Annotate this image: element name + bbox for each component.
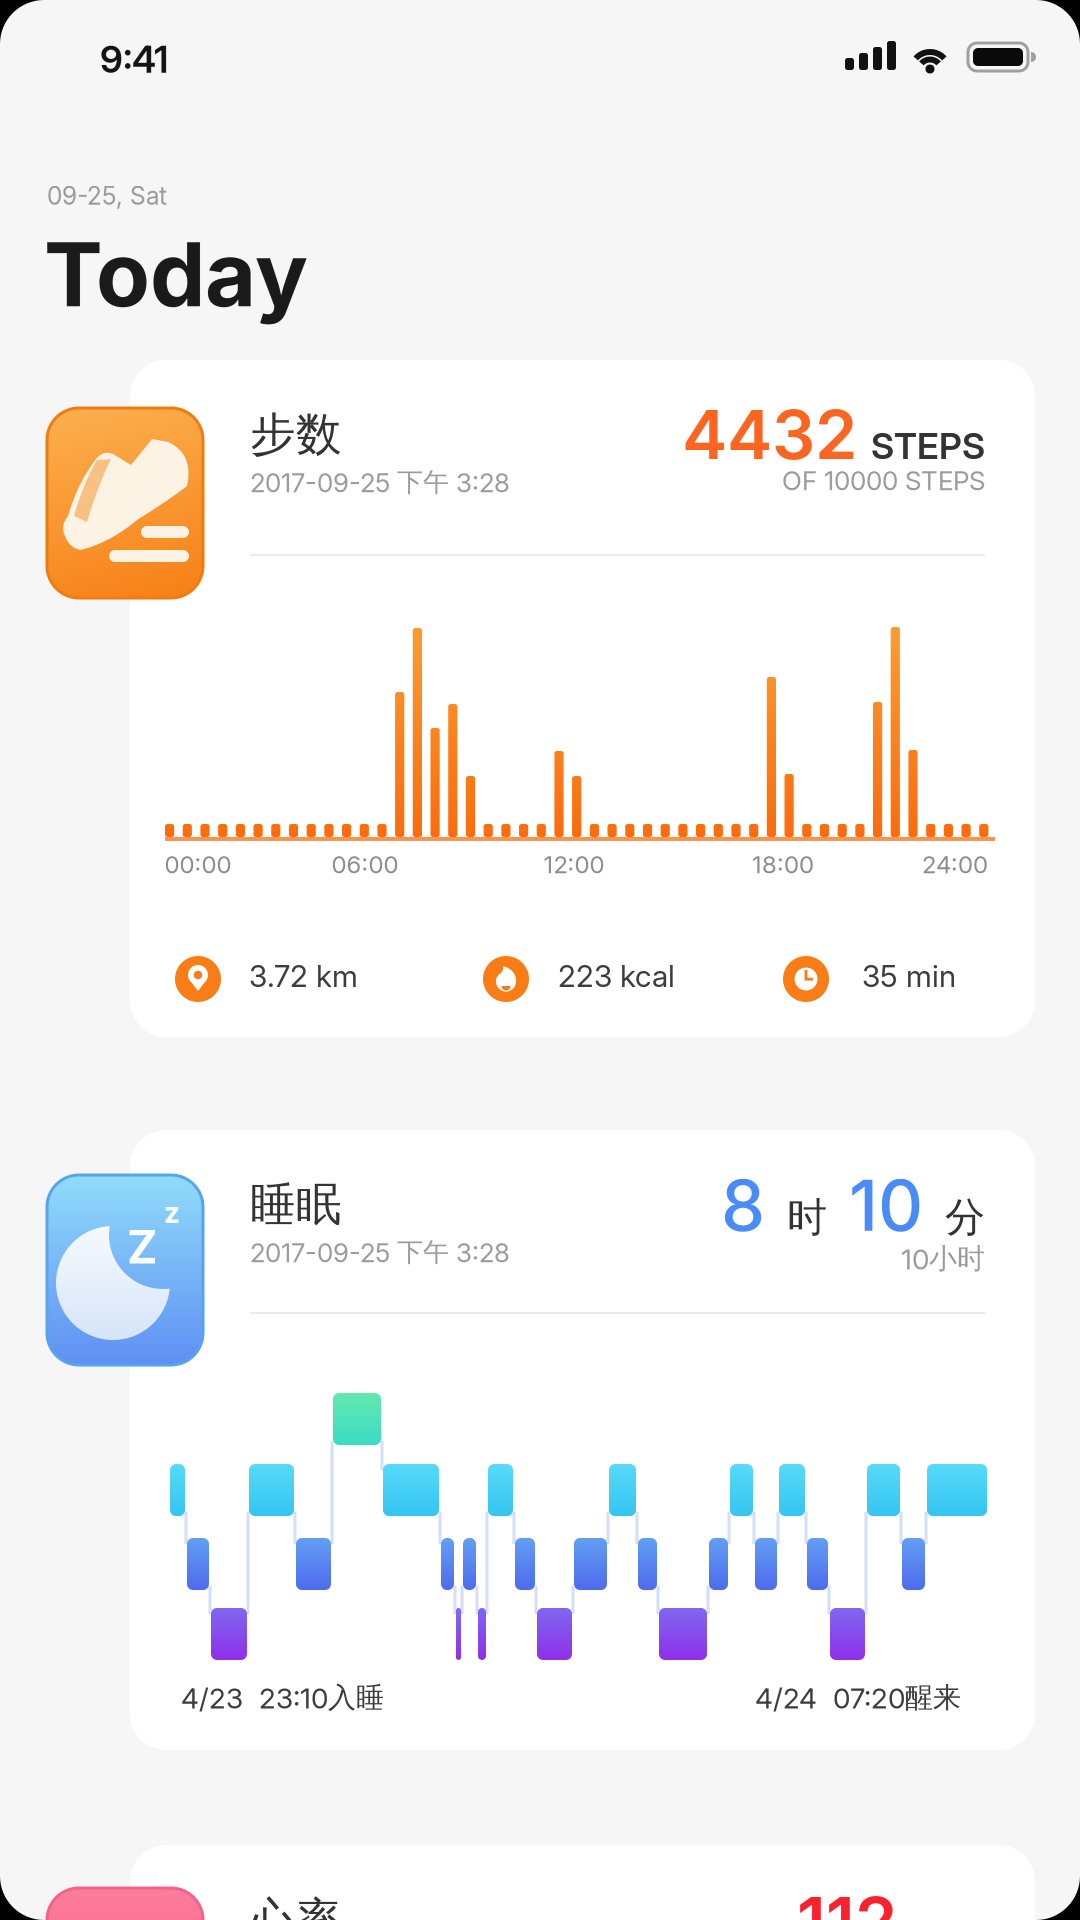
staticText: 09-25, Sat <box>47 181 167 211</box>
staticText: 3.72 km <box>249 958 358 994</box>
staticText: z <box>164 1195 180 1230</box>
staticText: 4/24 07:20醒来 <box>755 1680 961 1715</box>
staticText: 睡眠 <box>250 1176 342 1233</box>
button[interactable]: Z <box>47 1130 1035 1750</box>
staticText: 223 kcal <box>558 958 675 994</box>
staticText: 4432 <box>682 393 857 475</box>
staticText: 35 min <box>862 958 956 994</box>
staticText: 24:00 <box>922 850 988 879</box>
staticText: 10 <box>849 1163 923 1248</box>
staticText: Today <box>44 221 308 327</box>
staticText: OF 10000 STEPS <box>782 465 985 496</box>
staticText: 分 <box>945 1192 985 1243</box>
staticText: 时 <box>787 1192 827 1243</box>
staticText: 06:00 <box>331 850 398 879</box>
button[interactable]: 心率 <box>47 1845 1035 1920</box>
staticText: 2017-09-25 下午 3:28 <box>250 1236 510 1269</box>
staticText: 10小时 <box>901 1241 985 1276</box>
staticText: 8 <box>721 1163 765 1248</box>
button[interactable]: 步数 <box>47 360 1035 1037</box>
staticText: 9:41 <box>100 37 168 82</box>
staticText: 00:00 <box>164 850 231 879</box>
staticText: 4/23 23:10入睡 <box>181 1680 384 1715</box>
staticText: 12:00 <box>543 850 604 879</box>
staticText: Z <box>127 1219 158 1275</box>
staticText: 18:00 <box>752 850 814 879</box>
staticText: 112 <box>797 1880 897 1920</box>
staticText: 2017-09-25 下午 3:28 <box>250 466 510 499</box>
staticText: 心率 <box>250 1891 342 1920</box>
staticText: 步数 <box>250 406 342 463</box>
staticText: STEPS <box>871 424 985 468</box>
